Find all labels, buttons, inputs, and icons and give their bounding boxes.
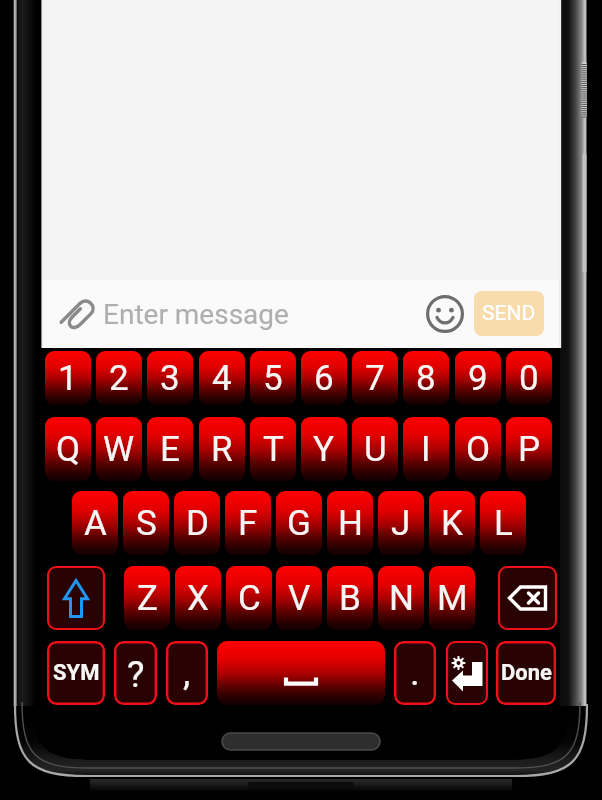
button[interactable]: A: [72, 491, 118, 555]
staticText: Done: [501, 660, 552, 686]
button[interactable]: O: [455, 417, 501, 481]
staticText: SEND: [482, 301, 536, 326]
button[interactable]: N: [378, 566, 424, 630]
staticText: X: [187, 578, 209, 619]
button[interactable]: Enter: [446, 641, 488, 705]
staticText: Enter message: [103, 298, 289, 331]
button[interactable]: U: [352, 417, 398, 481]
staticText: I: [421, 429, 431, 470]
staticText: C: [238, 578, 261, 619]
staticText: U: [364, 429, 387, 470]
button[interactable]: 9: [455, 351, 501, 405]
staticText: 5: [263, 358, 283, 399]
staticText: L: [494, 503, 513, 544]
button[interactable]: ,: [166, 641, 208, 705]
button[interactable]: 6: [301, 351, 347, 405]
button[interactable]: 8: [403, 351, 449, 405]
button[interactable]: 3: [147, 351, 193, 405]
button[interactable]: Emoji: [426, 295, 464, 333]
button[interactable]: Done: [496, 641, 556, 705]
staticText: 7: [365, 358, 385, 399]
button[interactable]: 1: [45, 351, 91, 405]
staticText: A: [84, 503, 107, 544]
button[interactable]: J: [378, 491, 424, 555]
staticText: 4: [212, 358, 232, 399]
staticText: 2: [109, 358, 129, 399]
staticText: R: [211, 429, 233, 470]
staticText: E: [160, 429, 180, 470]
button[interactable]: E: [147, 417, 193, 481]
button[interactable]: ?: [114, 641, 157, 705]
staticText: O: [466, 429, 491, 470]
button[interactable]: 4: [199, 351, 245, 405]
staticText: T: [263, 429, 284, 470]
staticText: 9: [468, 358, 488, 399]
staticText: P: [518, 429, 541, 470]
button[interactable]: R: [199, 417, 245, 481]
button[interactable]: B: [327, 566, 373, 630]
staticText: SYM: [53, 660, 100, 686]
button[interactable]: T: [250, 417, 296, 481]
button[interactable]: SYM: [47, 641, 105, 705]
staticText: 6: [314, 358, 334, 399]
staticText: J: [391, 503, 411, 544]
button[interactable]: Shift: [47, 566, 105, 630]
button[interactable]: 0: [506, 351, 552, 405]
staticText: Q: [56, 429, 81, 470]
staticText: .: [410, 651, 420, 694]
staticText: W: [103, 429, 135, 470]
staticText: D: [186, 503, 209, 544]
staticText: 1: [58, 358, 78, 399]
button[interactable]: Q: [45, 417, 91, 481]
button[interactable]: F: [225, 491, 271, 555]
staticText: 0: [519, 358, 539, 399]
staticText: M: [437, 578, 468, 619]
button[interactable]: Z: [124, 566, 170, 630]
button[interactable]: 2: [96, 351, 142, 405]
button[interactable]: V: [276, 566, 322, 630]
button[interactable]: L: [480, 491, 526, 555]
staticText: F: [238, 503, 258, 544]
staticText: K: [441, 503, 463, 544]
staticText: 3: [160, 358, 180, 399]
button[interactable]: I: [403, 417, 449, 481]
button[interactable]: P: [506, 417, 552, 481]
staticText: Y: [313, 429, 335, 470]
button[interactable]: Backspace: [498, 566, 557, 630]
staticText: G: [287, 503, 311, 544]
staticText: ,: [183, 651, 191, 694]
staticText: H: [338, 503, 363, 544]
button[interactable]: W: [96, 417, 142, 481]
button[interactable]: .: [394, 641, 436, 705]
button[interactable]: 7: [352, 351, 398, 405]
button[interactable]: S: [123, 491, 169, 555]
button[interactable]: G: [276, 491, 322, 555]
staticText: V: [288, 578, 311, 619]
staticText: B: [339, 578, 361, 619]
staticText: S: [136, 503, 157, 544]
button[interactable]: 5: [250, 351, 296, 405]
button[interactable]: Space: [217, 641, 385, 705]
button[interactable]: K: [429, 491, 475, 555]
button[interactable]: C: [226, 566, 272, 630]
staticText: 8: [416, 358, 436, 399]
staticText: ?: [127, 653, 145, 696]
button[interactable]: D: [174, 491, 220, 555]
button[interactable]: M: [429, 566, 475, 630]
staticText: N: [389, 578, 414, 619]
button[interactable]: Y: [301, 417, 347, 481]
button[interactable]: X: [175, 566, 221, 630]
button[interactable]: SEND: [474, 291, 544, 336]
staticText: Z: [137, 578, 158, 619]
button[interactable]: Attach file: [58, 292, 102, 336]
button[interactable]: H: [327, 491, 373, 555]
